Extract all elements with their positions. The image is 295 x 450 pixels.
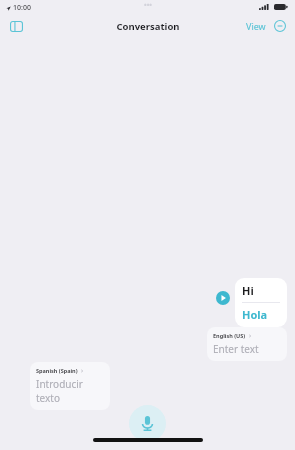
staticText: Hola — [242, 307, 268, 322]
staticText: View — [246, 20, 266, 32]
staticText: Enter text — [213, 342, 259, 356]
staticText: Introducir texto — [36, 377, 104, 405]
button[interactable]: Play translation — [216, 291, 230, 305]
button[interactable]: Hi — [235, 278, 287, 327]
staticText: ••• — [144, 1, 152, 11]
staticText: Spanish (Spain) — [36, 367, 78, 374]
staticText: Conversation — [116, 20, 180, 33]
button[interactable]: More options — [271, 17, 289, 35]
staticText: 10:00 — [13, 3, 31, 13]
button[interactable]: Toggle sidebar — [6, 16, 26, 36]
button[interactable]: Spanish (Spain) — [30, 362, 110, 410]
button[interactable]: English (US) — [207, 327, 287, 361]
button[interactable]: Record voice — [129, 405, 166, 442]
staticText: Hi — [242, 283, 254, 298]
staticText: English (US) — [213, 332, 246, 339]
button[interactable]: View — [244, 18, 268, 34]
